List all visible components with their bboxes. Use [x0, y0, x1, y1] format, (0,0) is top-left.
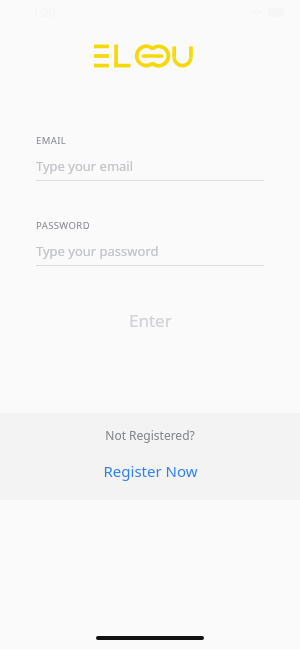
button[interactable]: Register Now [93, 457, 208, 485]
staticText: PASSWORD [36, 219, 90, 232]
staticText: Not Registered? [105, 427, 195, 443]
staticText: Type your password [36, 242, 159, 260]
staticText: Enter [129, 309, 172, 332]
button[interactable]: Type your password [36, 241, 264, 261]
staticText: Register Now [103, 461, 198, 481]
button[interactable]: Enter [0, 300, 300, 340]
button[interactable]: Type your email [36, 156, 264, 176]
staticText: EMAIL [36, 134, 67, 147]
staticText: Type your email [36, 157, 134, 175]
